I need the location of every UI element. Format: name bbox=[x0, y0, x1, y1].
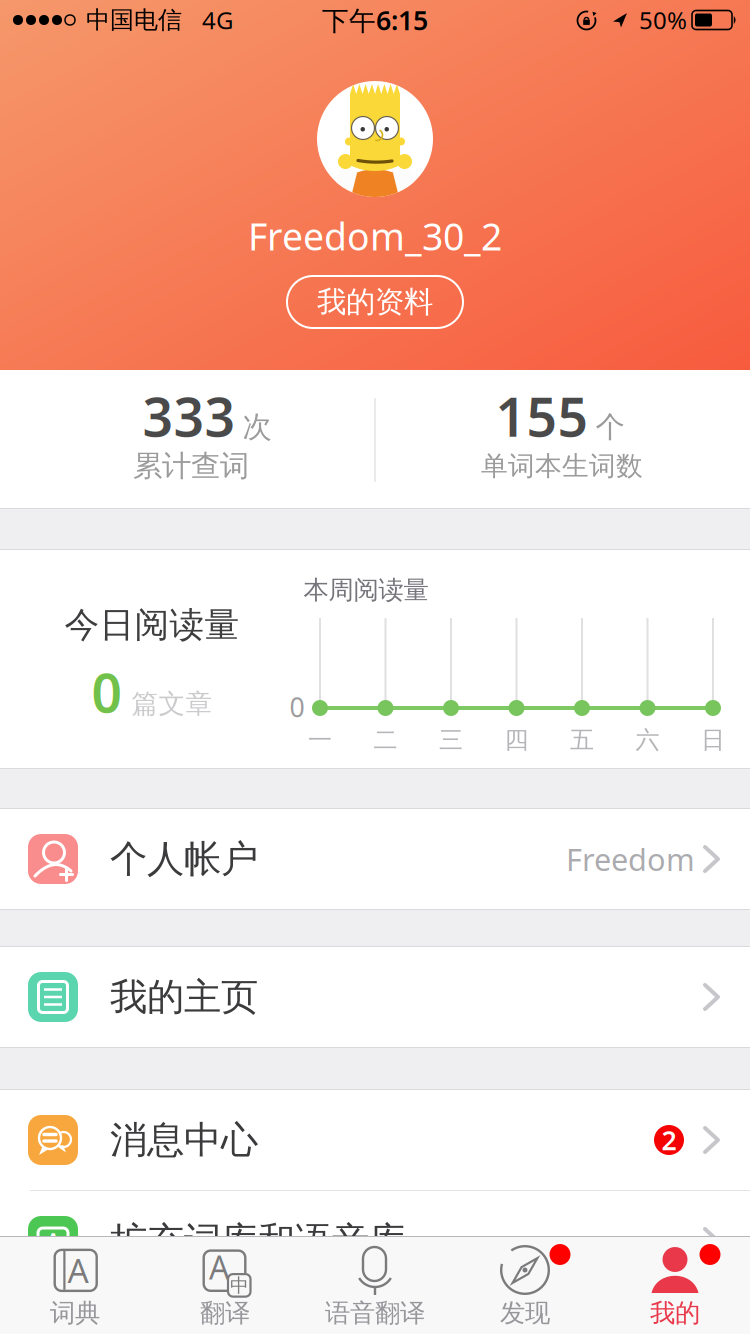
staticText: 篇文章 bbox=[131, 687, 212, 720]
staticText: 二 bbox=[373, 725, 397, 755]
staticText: 0 bbox=[289, 689, 304, 725]
staticText: 本周阅读量 bbox=[303, 574, 428, 605]
staticText: 次 bbox=[242, 409, 271, 445]
staticText: 四 bbox=[504, 725, 528, 755]
staticText: 三 bbox=[439, 725, 463, 755]
staticText: 50% bbox=[639, 4, 687, 36]
button[interactable]: 个人帐户 bbox=[0, 809, 750, 909]
button[interactable]: 语音翻译 bbox=[300, 1237, 450, 1334]
button[interactable]: 发现 bbox=[450, 1237, 600, 1334]
button[interactable]: 我的主页 bbox=[0, 947, 750, 1047]
button[interactable]: A bbox=[150, 1237, 300, 1334]
button[interactable]: 我的资料 bbox=[287, 276, 463, 328]
staticText: 一 bbox=[308, 725, 332, 755]
staticText: 翻译 bbox=[200, 1297, 250, 1328]
staticText: 个 bbox=[595, 409, 624, 445]
staticText: 我的资料 bbox=[317, 284, 433, 320]
staticText: 五 bbox=[570, 725, 594, 755]
staticText: 单词本生词数 bbox=[481, 450, 643, 482]
staticText: 我的 bbox=[650, 1297, 700, 1328]
staticText: 日 bbox=[701, 725, 725, 755]
staticText: 发现 bbox=[500, 1297, 550, 1328]
staticText: Freedom bbox=[566, 839, 695, 879]
staticText: 六 bbox=[635, 725, 659, 755]
staticText: 155 bbox=[495, 381, 588, 451]
staticText: 今日阅读量 bbox=[64, 604, 239, 646]
staticText: 0 bbox=[91, 657, 122, 727]
staticText: 词典 bbox=[50, 1297, 100, 1328]
button[interactable]: 头像 bbox=[317, 81, 433, 197]
staticText: A bbox=[67, 1248, 88, 1292]
staticText: 我的主页 bbox=[110, 974, 258, 1020]
staticText: 消息中心 bbox=[110, 1117, 258, 1163]
staticText: 4G bbox=[202, 4, 233, 36]
staticText: 中国电信 bbox=[86, 5, 182, 35]
button[interactable]: A bbox=[0, 1237, 150, 1334]
staticText: 累计查词 bbox=[133, 448, 249, 484]
button[interactable]: A bbox=[0, 1191, 750, 1291]
staticText: 中 bbox=[230, 1274, 249, 1297]
staticText: A bbox=[46, 1227, 60, 1255]
staticText: 语音翻译 bbox=[325, 1297, 425, 1328]
staticText: A bbox=[209, 1246, 229, 1288]
staticText: 333 bbox=[142, 381, 235, 451]
staticText: 下午6:15 bbox=[322, 2, 428, 38]
button[interactable]: 我的 bbox=[600, 1237, 750, 1334]
staticText: 个人帐户 bbox=[110, 836, 258, 882]
button[interactable]: 消息中心 bbox=[0, 1090, 750, 1190]
staticText: 2 bbox=[661, 1122, 676, 1158]
staticText: Freedom_30_2 bbox=[248, 211, 502, 261]
staticText: 扩充词库和语音库 bbox=[110, 1218, 406, 1264]
